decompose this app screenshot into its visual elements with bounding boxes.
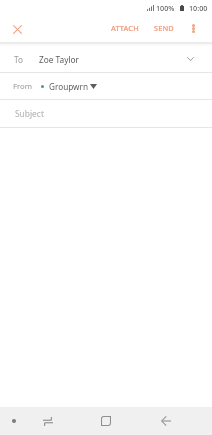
staticText: SEND <box>154 23 174 33</box>
staticText: To <box>14 54 23 65</box>
staticText: Subject <box>15 108 44 119</box>
button[interactable]: From <box>0 73 212 99</box>
button[interactable]: To <box>0 46 212 72</box>
staticText: 10:00 <box>189 3 208 13</box>
button[interactable]: Show menu <box>0 407 30 435</box>
button[interactable]: ATTACH <box>106 15 144 41</box>
staticText: ATTACH <box>111 23 139 33</box>
staticText: From <box>13 81 33 92</box>
button[interactable]: Subject <box>0 100 212 127</box>
button[interactable]: Close <box>0 16 33 42</box>
staticText: Zoe Taylor <box>39 54 80 65</box>
button[interactable]: Home <box>92 407 120 435</box>
button[interactable]: More options <box>182 16 204 42</box>
button[interactable]: Back <box>152 407 180 435</box>
staticText: Groupwrn <box>49 81 88 92</box>
staticText: 100% <box>156 3 175 13</box>
button[interactable]: Recent apps <box>34 407 61 435</box>
button[interactable]: SEND <box>149 15 179 41</box>
